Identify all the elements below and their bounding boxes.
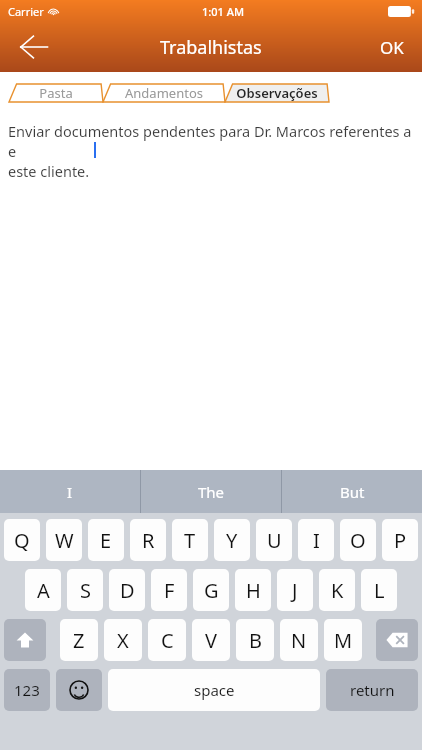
button[interactable]: space xyxy=(108,669,320,711)
button[interactable]: R xyxy=(130,519,166,561)
button[interactable]: K xyxy=(319,569,355,611)
button[interactable]: W xyxy=(46,519,82,561)
button[interactable]: X xyxy=(104,619,142,661)
button[interactable]: Emoji xyxy=(56,669,102,711)
staticText: Trabalhistas xyxy=(160,35,262,60)
button[interactable]: Pasta xyxy=(9,84,103,102)
button[interactable]: T xyxy=(172,519,208,561)
button[interactable]: Shift xyxy=(4,619,46,661)
button[interactable]: Andamentos xyxy=(103,84,225,102)
button[interactable]: But xyxy=(282,470,422,513)
staticText: W xyxy=(55,527,74,554)
button[interactable]: Back xyxy=(12,25,56,69)
staticText: S xyxy=(80,577,91,604)
staticText: 123 xyxy=(14,680,40,700)
button[interactable]: Z xyxy=(60,619,98,661)
button[interactable]: S xyxy=(67,569,103,611)
staticText: Q xyxy=(14,527,30,554)
button[interactable]: M xyxy=(324,619,362,661)
button[interactable]: E xyxy=(88,519,124,561)
staticText: Pasta xyxy=(39,84,73,102)
button[interactable]: C xyxy=(148,619,186,661)
staticText: I xyxy=(67,482,73,502)
button[interactable]: A xyxy=(25,569,61,611)
button[interactable]: I xyxy=(0,470,140,513)
staticText: T xyxy=(184,527,196,554)
button[interactable]: Y xyxy=(214,519,250,561)
staticText: B xyxy=(249,627,262,654)
staticText: The xyxy=(198,482,225,502)
staticText: I xyxy=(313,527,320,554)
staticText: OK xyxy=(380,36,404,59)
staticText: K xyxy=(331,577,344,604)
staticText: Observações xyxy=(236,84,318,102)
button[interactable]: O xyxy=(340,519,376,561)
staticText: F xyxy=(164,577,175,604)
button[interactable]: U xyxy=(256,519,292,561)
button[interactable]: return xyxy=(326,669,418,711)
staticText: But xyxy=(340,482,365,502)
staticText: V xyxy=(205,627,217,654)
button[interactable]: J xyxy=(277,569,313,611)
staticText: J xyxy=(292,577,298,604)
button[interactable]: D xyxy=(109,569,145,611)
button[interactable]: N xyxy=(280,619,318,661)
staticText: O xyxy=(350,527,366,554)
staticText: X xyxy=(117,627,129,654)
staticText: D xyxy=(120,577,135,604)
staticText: E xyxy=(100,527,112,554)
staticText: Carrier xyxy=(8,4,44,19)
staticText: L xyxy=(374,577,385,604)
staticText: C xyxy=(161,627,174,654)
button[interactable]: Observações xyxy=(225,84,329,102)
staticText: H xyxy=(246,577,261,604)
button[interactable]: Q xyxy=(4,519,40,561)
button[interactable]: F xyxy=(151,569,187,611)
button[interactable]: Backspace xyxy=(376,619,418,661)
staticText: Y xyxy=(226,527,238,554)
staticText: R xyxy=(142,527,155,554)
button[interactable]: B xyxy=(236,619,274,661)
button[interactable]: OK xyxy=(372,28,412,67)
staticText: M xyxy=(334,627,353,654)
staticText: return xyxy=(350,680,395,700)
staticText: A xyxy=(37,577,50,604)
button[interactable]: L xyxy=(361,569,397,611)
staticText: U xyxy=(267,527,282,554)
button[interactable]: G xyxy=(193,569,229,611)
staticText: G xyxy=(204,577,219,604)
staticText: Andamentos xyxy=(125,84,203,102)
staticText: P xyxy=(394,527,407,554)
staticText: Enviar documentos pendentes para Dr. Mar… xyxy=(8,121,414,181)
staticText: Z xyxy=(73,627,85,654)
button[interactable]: 123 xyxy=(4,669,50,711)
staticText: space xyxy=(194,680,235,700)
staticText: N xyxy=(291,627,307,654)
button[interactable]: I xyxy=(298,519,334,561)
button[interactable]: V xyxy=(192,619,230,661)
staticText: 1:01 AM xyxy=(202,4,245,19)
button[interactable]: P xyxy=(382,519,418,561)
button[interactable]: The xyxy=(141,470,281,513)
button[interactable]: H xyxy=(235,569,271,611)
